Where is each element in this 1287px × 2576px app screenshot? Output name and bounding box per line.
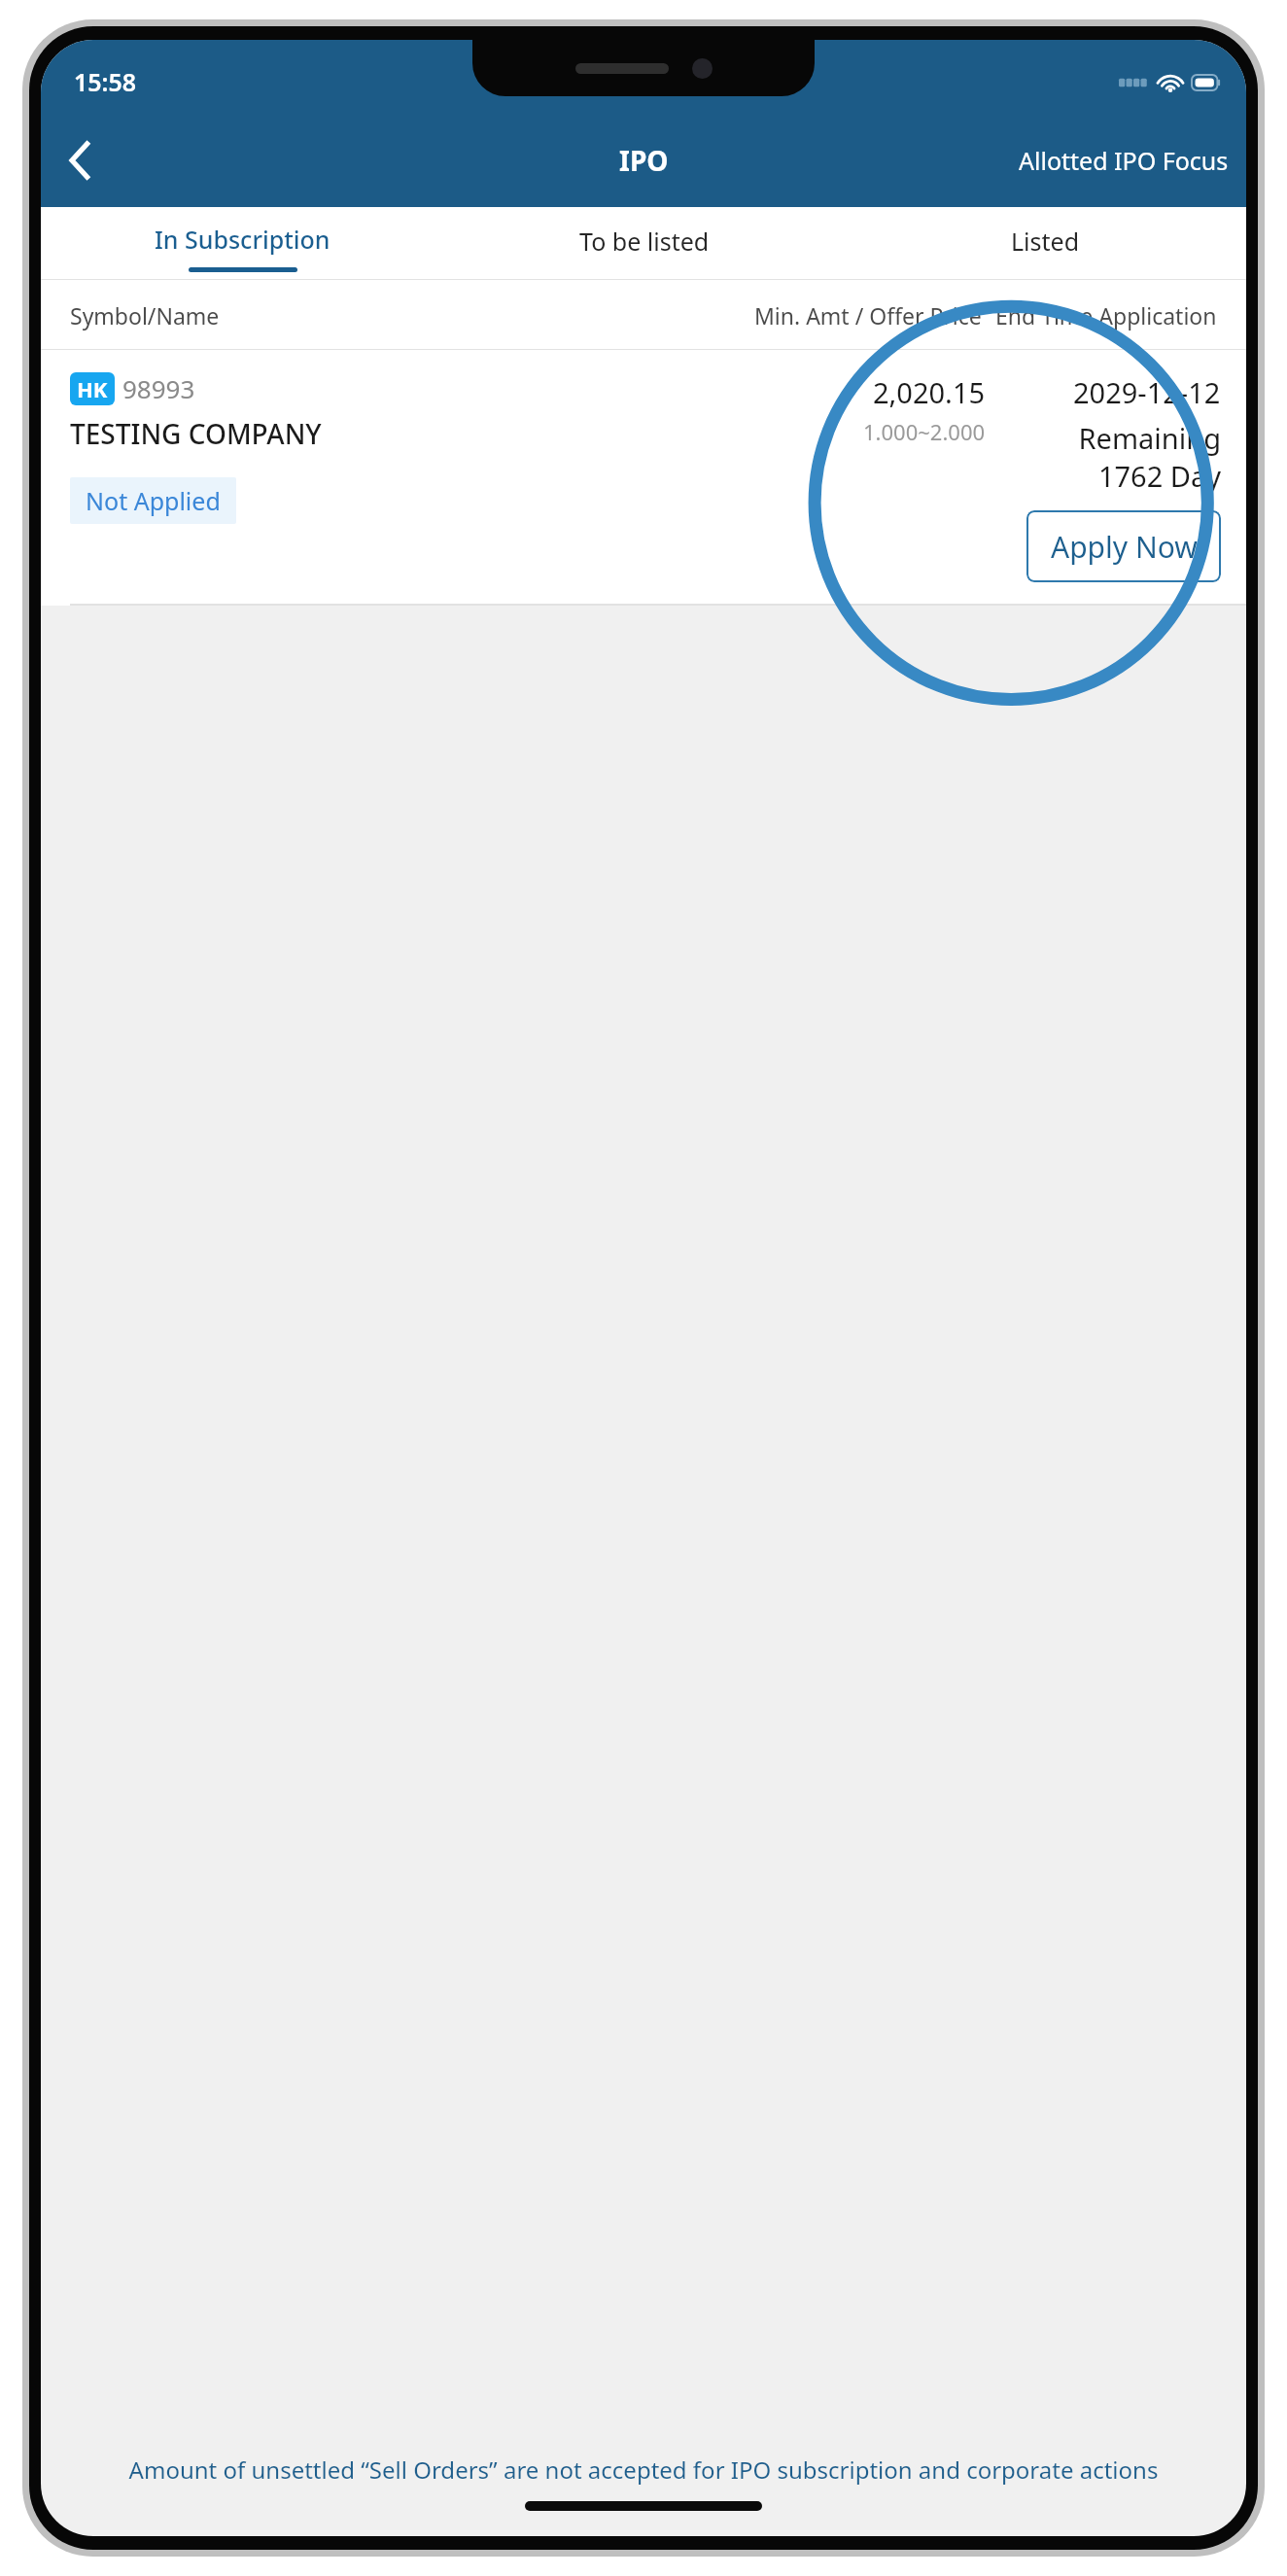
staticText: 1.000~2.000 [863, 417, 986, 446]
staticText: IPO [619, 142, 669, 179]
staticText: TESTING COMPANY [70, 415, 322, 452]
staticText: Not Applied [86, 484, 221, 517]
staticText: Listed [1011, 225, 1080, 258]
staticText: Min. Amt / Offer Price [754, 300, 982, 331]
staticText: 98993 [122, 371, 195, 405]
staticText: 15:58 [74, 65, 137, 98]
staticText: Remaining 1762 Day [1011, 419, 1221, 495]
button[interactable]: In Subscription [41, 207, 443, 279]
button[interactable]: Apply Now [1026, 510, 1221, 582]
staticText: Amount of unsettled “Sell Orders” are no… [109, 2454, 1178, 2486]
staticText: HK [77, 374, 108, 403]
button[interactable]: To be listed [443, 207, 845, 279]
button[interactable]: Back [41, 114, 119, 207]
staticText: Symbol/Name [70, 300, 754, 331]
button[interactable]: Listed [845, 207, 1246, 279]
staticText: 2029-12-12 [1073, 373, 1221, 411]
staticText: In Subscription [155, 223, 330, 256]
button[interactable]: Allotted IPO Focus [1001, 114, 1246, 207]
staticText: End Time Application [995, 300, 1217, 331]
staticText: Allotted IPO Focus [1019, 144, 1229, 177]
staticText: 2,020.15 [873, 373, 986, 411]
staticText: To be listed [579, 225, 710, 258]
staticText: Apply Now [1051, 527, 1198, 567]
